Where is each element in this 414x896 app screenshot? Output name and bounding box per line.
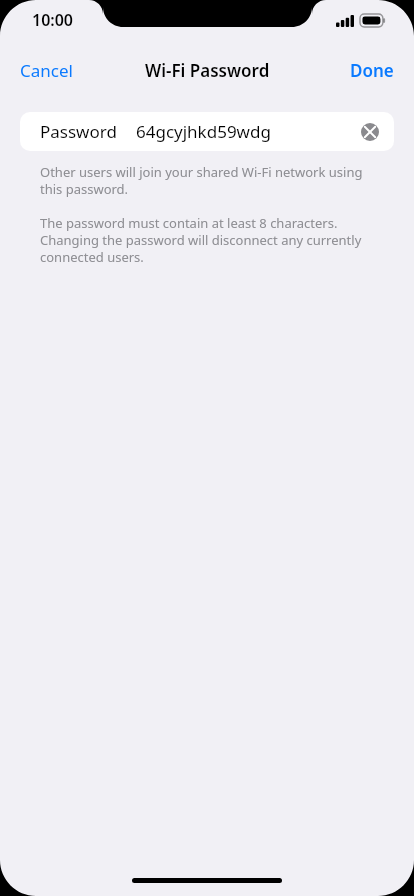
- staticText: Other users will join your shared Wi-Fi …: [40, 163, 374, 198]
- button[interactable]: Cancel: [0, 49, 93, 92]
- staticText: Cancel: [20, 59, 73, 82]
- staticText: 64gcyjhkd59wdg: [136, 120, 271, 143]
- button[interactable]: Done: [330, 49, 414, 92]
- staticText: 10:00: [32, 9, 74, 31]
- button[interactable]: Clear text: [358, 120, 382, 144]
- staticText: Password: [40, 120, 117, 143]
- button[interactable]: Password: [20, 112, 394, 151]
- staticText: Wi-Fi Password: [145, 59, 270, 82]
- staticText: The password must contain at least 8 cha…: [40, 214, 374, 266]
- staticText: Done: [350, 59, 394, 82]
